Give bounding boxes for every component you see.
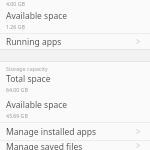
staticText: Running apps xyxy=(6,36,132,48)
staticText: Manage saved files xyxy=(6,141,132,150)
button[interactable]: 4.00 GB xyxy=(0,0,150,7)
button[interactable]: Manage installed apps xyxy=(0,123,150,140)
staticText: Available space xyxy=(6,10,68,22)
staticText: 64.00 GB xyxy=(6,86,28,93)
staticText: 4.00 GB xyxy=(6,0,25,6)
button[interactable]: Manage saved files xyxy=(0,141,150,150)
button[interactable]: Running apps xyxy=(0,34,150,49)
staticText: 43.69 GB xyxy=(6,112,28,119)
staticText: Manage installed apps xyxy=(6,126,132,138)
other: Manage installed apps xyxy=(134,127,143,136)
button[interactable]: Available space xyxy=(0,97,150,122)
other: Manage saved files xyxy=(134,141,143,150)
staticText: 1.26 GB xyxy=(6,23,25,30)
other: Running apps xyxy=(134,37,143,46)
button[interactable]: Available space xyxy=(0,7,150,33)
staticText: Total space xyxy=(6,73,51,85)
staticText: Available space xyxy=(6,99,68,111)
button[interactable]: Total space xyxy=(0,73,150,97)
staticText: Storage capacity xyxy=(6,65,48,72)
